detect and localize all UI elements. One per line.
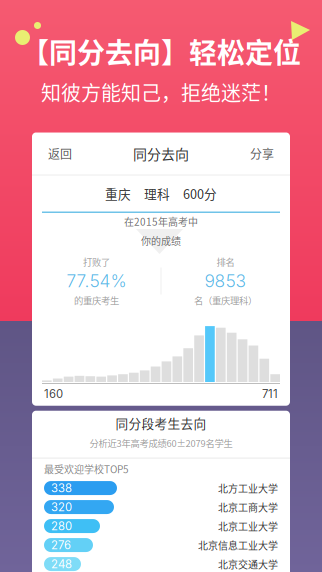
staticText: 北京工商大学 (218, 500, 278, 514)
staticText: 排名 (216, 255, 234, 268)
staticText: 返回 (48, 145, 72, 162)
staticText: 77.54% (66, 270, 126, 291)
staticText: 160 (44, 387, 63, 401)
staticText: 同分去向 (133, 143, 189, 164)
staticText: 打败了 (83, 255, 110, 268)
staticText: 分享 (250, 145, 274, 162)
staticText: 最受欢迎学校TOP5 (44, 462, 129, 476)
staticText: 9853 (204, 270, 246, 291)
staticText: 北方工业大学 (218, 481, 278, 495)
staticText: 重庆 理科 600分 (105, 184, 217, 203)
staticText: 名（重庆理科） (194, 293, 257, 307)
staticText: 北京交通大学 (218, 557, 278, 571)
staticText: 同分段考生去向 (115, 414, 206, 432)
staticText: 知彼方能知己，拒绝迷茫！ (41, 77, 281, 106)
staticText: 分析近3年高考成绩60±2079名学生 (89, 436, 232, 450)
button[interactable]: 返回 (40, 135, 80, 172)
staticText: 248 (51, 557, 72, 571)
staticText: 【同分去向】轻松定位 (21, 31, 301, 71)
staticText: 的重庆考生 (74, 293, 119, 307)
staticText: 在2015年高考中 (124, 214, 198, 228)
button[interactable]: 分享 (242, 135, 282, 172)
staticText: 你的成绩 (141, 233, 181, 248)
staticText: 320 (51, 500, 72, 514)
staticText: 北京信息工业大学 (198, 538, 278, 552)
staticText: 711 (262, 387, 278, 401)
staticText: 276 (51, 538, 71, 552)
staticText: 338 (51, 481, 72, 495)
staticText: 280 (51, 519, 72, 533)
staticText: 北京工业大学 (218, 519, 278, 533)
